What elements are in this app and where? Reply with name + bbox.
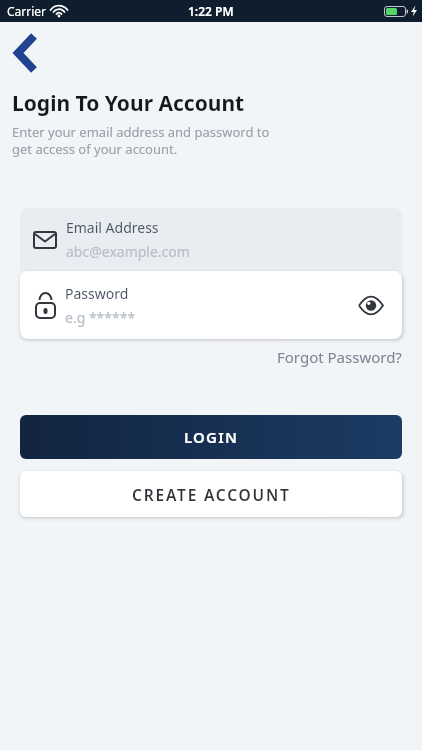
button[interactable]: Password <box>20 271 402 339</box>
staticText: abc@example.com <box>66 242 190 261</box>
button[interactable]: LOGIN <box>20 415 402 459</box>
staticText: 1:22 PM <box>188 3 234 19</box>
staticText: Carrier <box>7 3 47 19</box>
button[interactable]: Email Address <box>20 208 402 271</box>
staticText: LOGIN <box>184 427 239 447</box>
button[interactable]: Forgot Password? <box>277 347 402 367</box>
staticText: CREATE ACCOUNT <box>132 484 291 505</box>
staticText: Login To Your Account <box>12 89 245 118</box>
button[interactable]: CREATE ACCOUNT <box>20 471 402 517</box>
staticText: Password <box>65 284 129 303</box>
staticText: Enter your email address and password to… <box>12 123 270 158</box>
button[interactable] <box>8 31 44 75</box>
staticText: Email Address <box>66 218 159 237</box>
button[interactable] <box>355 289 387 321</box>
staticText: Forgot Password? <box>277 347 402 367</box>
staticText: e.g ****** <box>65 308 136 327</box>
